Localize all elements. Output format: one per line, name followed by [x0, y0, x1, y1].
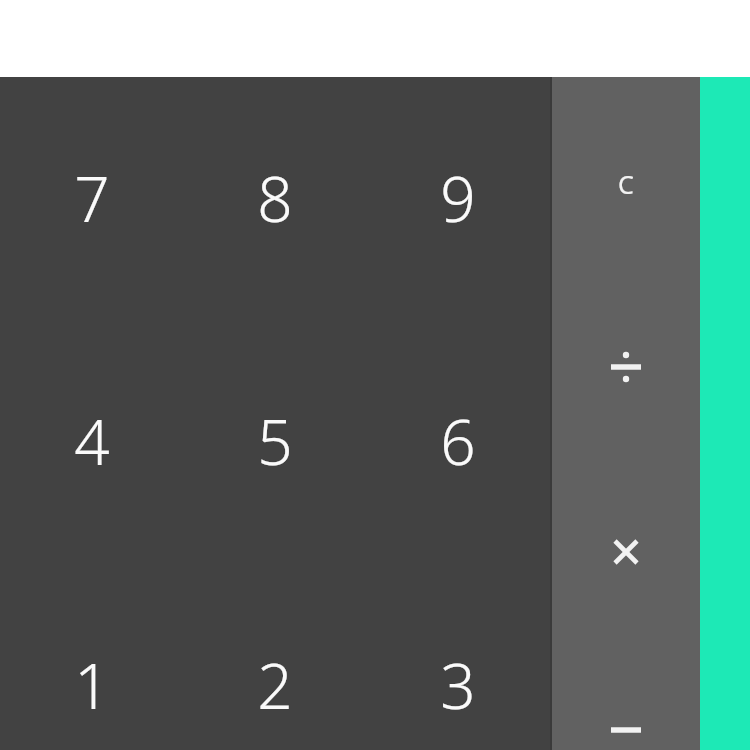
button[interactable]: 8 [183, 76, 366, 320]
staticText: C [618, 167, 634, 201]
button[interactable]: Minus [552, 638, 700, 750]
staticText: 6 [440, 399, 476, 483]
button[interactable]: 1 [0, 563, 183, 750]
button[interactable]: 9 [366, 76, 550, 320]
button[interactable]: 2 [183, 563, 366, 750]
staticText: 9 [440, 156, 476, 240]
staticText: 8 [257, 156, 293, 240]
button[interactable]: 4 [0, 319, 183, 563]
button[interactable]: 7 [0, 76, 183, 320]
button[interactable]: 3 [366, 563, 550, 750]
button[interactable]: 6 [366, 319, 550, 563]
staticText: 5 [257, 399, 293, 483]
staticText: 4 [74, 399, 110, 483]
staticText: 1 [74, 643, 110, 727]
staticText: 2 [257, 643, 293, 727]
button[interactable]: 5 [183, 319, 366, 563]
staticText: 7 [74, 156, 110, 240]
button[interactable]: Multiply [552, 460, 700, 644]
button[interactable]: Divide [552, 275, 700, 459]
button[interactable]: Clear [552, 92, 700, 276]
staticText: 3 [440, 643, 476, 727]
